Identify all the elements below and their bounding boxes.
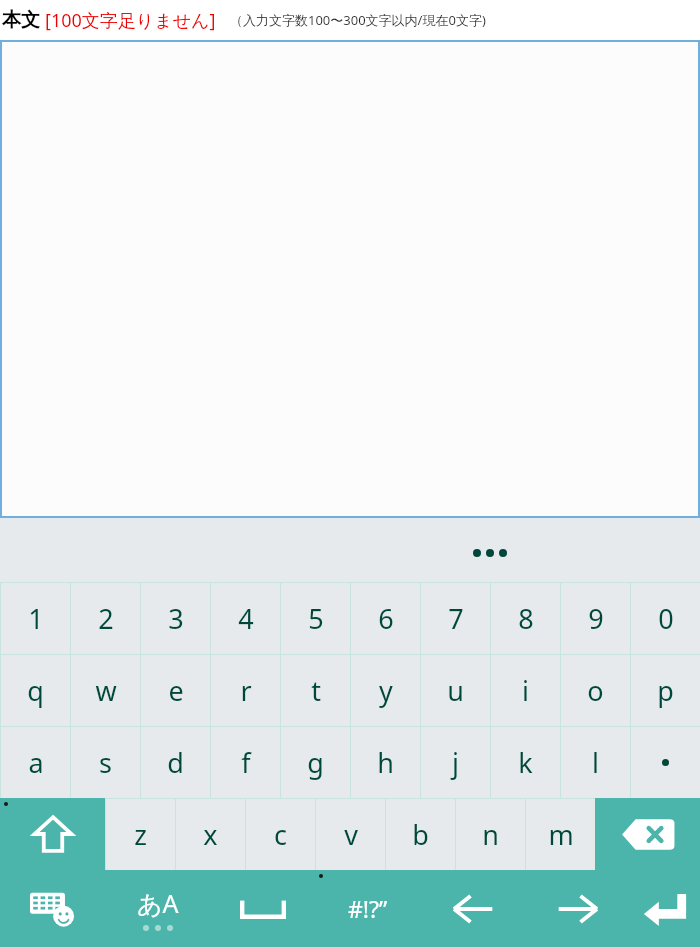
button[interactable]: Enter xyxy=(630,870,700,947)
staticText: u xyxy=(447,672,464,709)
button[interactable]: l xyxy=(561,727,630,798)
button[interactable]: 7 xyxy=(421,583,490,654)
staticText: b xyxy=(412,816,429,853)
button[interactable]: 3 xyxy=(141,583,210,654)
button[interactable]: a xyxy=(1,727,70,798)
button[interactable]: 0 xyxy=(631,583,700,654)
button[interactable]: Backspace xyxy=(595,798,700,870)
button[interactable]: g xyxy=(281,727,350,798)
button[interactable]: q xyxy=(1,655,70,726)
staticText: 1 xyxy=(28,600,44,637)
button[interactable]: 6 xyxy=(351,583,420,654)
staticText: v xyxy=(344,816,358,853)
button[interactable]: d xyxy=(141,727,210,798)
staticText: w xyxy=(95,672,117,709)
staticText: （入力文字数100〜300文字以内/現在0文字) xyxy=(230,11,486,29)
staticText: k xyxy=(518,744,533,781)
staticText: n xyxy=(482,816,499,853)
button[interactable]: 5 xyxy=(281,583,350,654)
button[interactable]: f xyxy=(211,727,280,798)
button[interactable]: 8 xyxy=(491,583,560,654)
staticText: h xyxy=(377,744,394,781)
button[interactable]: o xyxy=(561,655,630,726)
staticText: [100文字足りません] xyxy=(45,8,216,33)
button[interactable]: e xyxy=(141,655,210,726)
button[interactable]: More suggestions xyxy=(473,549,507,557)
button[interactable]: Space xyxy=(210,870,315,947)
staticText: 6 xyxy=(378,600,394,637)
staticText: 4 xyxy=(238,600,254,637)
button[interactable]: 1 xyxy=(1,583,70,654)
button[interactable]: z xyxy=(106,799,175,870)
button[interactable]: p xyxy=(631,655,700,726)
button[interactable]: 2 xyxy=(71,583,140,654)
staticText: g xyxy=(307,744,324,781)
button[interactable]: s xyxy=(71,727,140,798)
staticText: 9 xyxy=(588,600,604,637)
button[interactable]: 9 xyxy=(561,583,630,654)
staticText: 7 xyxy=(448,600,464,637)
button[interactable]: v xyxy=(316,799,385,870)
button[interactable]: x xyxy=(176,799,245,870)
staticText: q xyxy=(27,672,44,709)
staticText: #!?” xyxy=(348,893,388,924)
button[interactable]: w xyxy=(71,655,140,726)
staticText: f xyxy=(241,744,251,781)
staticText: o xyxy=(587,672,604,709)
staticText: j xyxy=(452,744,459,781)
button[interactable]: Symbols xyxy=(315,870,420,947)
staticText: e xyxy=(168,672,184,709)
button[interactable]: b xyxy=(386,799,455,870)
button[interactable]: Move cursor right xyxy=(525,870,630,947)
staticText: l xyxy=(592,744,599,781)
staticText: z xyxy=(134,816,147,853)
button[interactable]: Move cursor left xyxy=(420,870,525,947)
staticText: 5 xyxy=(308,600,324,637)
button[interactable]: t xyxy=(281,655,350,726)
button[interactable]: i xyxy=(491,655,560,726)
staticText: r xyxy=(240,672,252,709)
button[interactable]: h xyxy=(351,727,420,798)
staticText: y xyxy=(379,672,393,709)
button[interactable]: n xyxy=(456,799,525,870)
staticText: 0 xyxy=(658,600,674,637)
button[interactable]: Shift xyxy=(0,798,105,870)
staticText: t xyxy=(311,672,321,709)
staticText: 本文 xyxy=(2,8,40,32)
staticText: d xyxy=(167,744,184,781)
button[interactable] xyxy=(631,727,700,798)
button[interactable]: 4 xyxy=(211,583,280,654)
button[interactable]: k xyxy=(491,727,560,798)
button[interactable]: j xyxy=(421,727,490,798)
staticText: 2 xyxy=(98,600,114,637)
staticText: 3 xyxy=(168,600,184,637)
staticText: あA xyxy=(137,886,179,920)
staticText: c xyxy=(274,816,287,853)
staticText: p xyxy=(657,672,674,709)
staticText: s xyxy=(99,744,112,781)
button[interactable]: c xyxy=(246,799,315,870)
button[interactable]: Switch input mode xyxy=(105,870,210,947)
button[interactable]: u xyxy=(421,655,490,726)
staticText: i xyxy=(522,672,529,709)
button[interactable]: m xyxy=(526,799,595,870)
staticText: m xyxy=(548,816,574,853)
staticText: a xyxy=(28,744,44,781)
button[interactable]: Emoji keyboard xyxy=(0,870,105,947)
staticText: 8 xyxy=(518,600,534,637)
button[interactable]: y xyxy=(351,655,420,726)
staticText: x xyxy=(203,816,218,853)
button[interactable]: r xyxy=(211,655,280,726)
